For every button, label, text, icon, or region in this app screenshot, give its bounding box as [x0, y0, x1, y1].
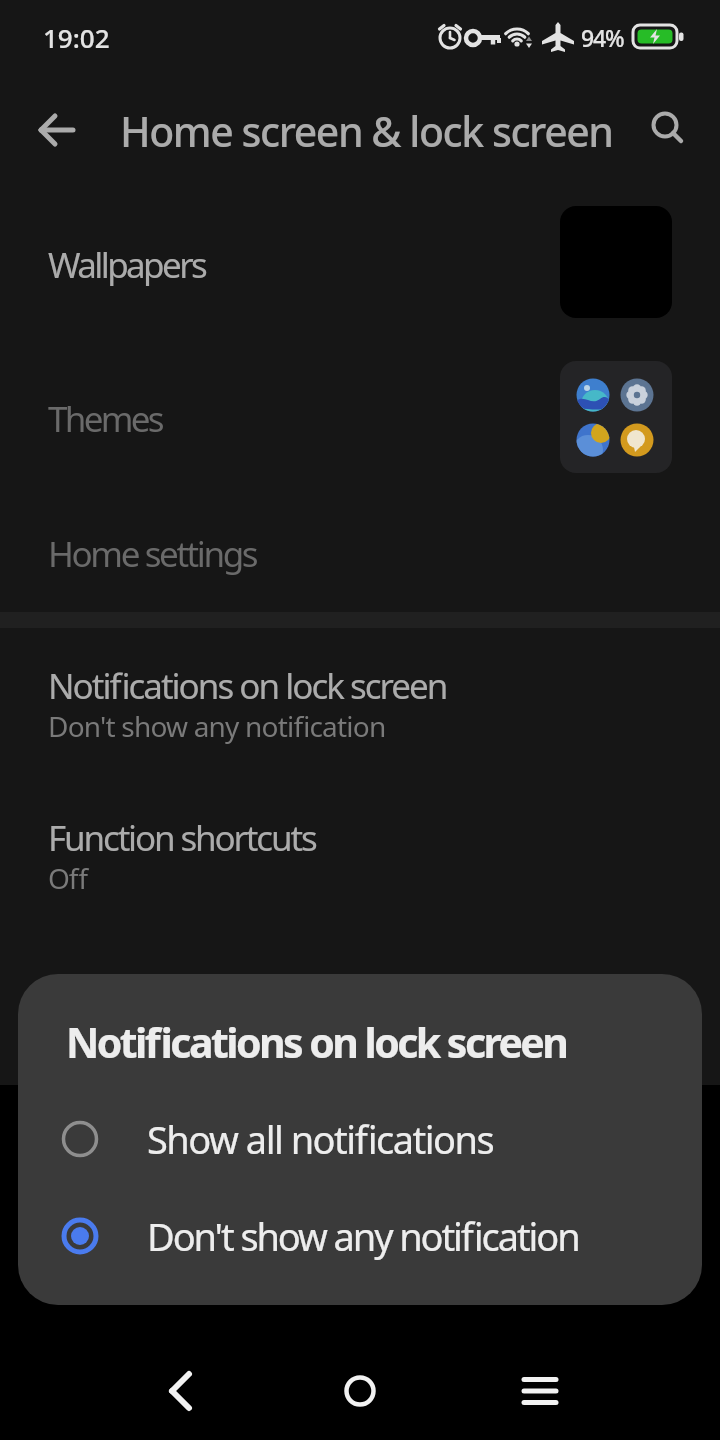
button[interactable]	[120, 1332, 240, 1440]
button[interactable]	[300, 1332, 420, 1440]
button[interactable]	[0, 790, 720, 920]
button[interactable]	[480, 1332, 600, 1440]
staticText: Notifications on lock screen	[48, 662, 447, 710]
button[interactable]	[0, 351, 720, 483]
staticText: Home screen & lock screen	[120, 103, 613, 159]
staticText: Home settings	[48, 530, 257, 578]
staticText: Themes	[48, 395, 162, 443]
staticText: Don't show any notification	[147, 1210, 579, 1262]
staticText: 94%	[581, 22, 624, 53]
staticText: Show all notifications	[147, 1113, 494, 1165]
staticText: Notifications on lock screen	[66, 1014, 567, 1070]
button[interactable]	[16, 90, 96, 170]
button[interactable]	[18, 1188, 702, 1285]
button[interactable]	[0, 640, 720, 770]
staticText: Function shortcuts	[48, 814, 316, 862]
staticText: Wallpapers	[48, 241, 206, 289]
button[interactable]	[0, 196, 720, 328]
button[interactable]	[18, 1091, 702, 1188]
button[interactable]	[630, 90, 710, 170]
button[interactable]	[0, 496, 720, 612]
staticText: Don't show any notification	[48, 707, 386, 745]
staticText: Off	[48, 859, 88, 897]
staticText: 19:02	[43, 20, 110, 55]
